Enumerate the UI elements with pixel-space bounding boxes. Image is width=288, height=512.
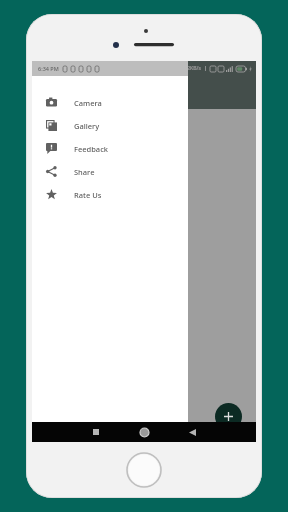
staticText: Share: [74, 167, 95, 177]
staticText: Feedback: [74, 144, 109, 154]
button[interactable]: Back: [179, 422, 205, 442]
button[interactable]: Home: [131, 422, 157, 442]
staticText: 6:34 PM: [38, 65, 59, 72]
button[interactable]: Recents: [83, 422, 109, 442]
button[interactable]: Feedback: [32, 137, 188, 160]
button[interactable]: Gallery: [32, 114, 188, 137]
staticText: 0.2KB/s: [183, 65, 201, 72]
staticText: Gallery: [74, 121, 100, 131]
staticText: Rate Us: [74, 190, 102, 200]
button[interactable]: Recents: [83, 422, 109, 442]
button[interactable]: Camera: [32, 91, 188, 114]
button[interactable]: Home: [131, 422, 157, 442]
staticText: Camera: [74, 98, 102, 108]
button[interactable]: Add: [215, 403, 242, 430]
button[interactable]: Rate Us: [32, 183, 188, 206]
button[interactable]: Share: [32, 160, 188, 183]
button[interactable]: Back: [179, 422, 205, 442]
